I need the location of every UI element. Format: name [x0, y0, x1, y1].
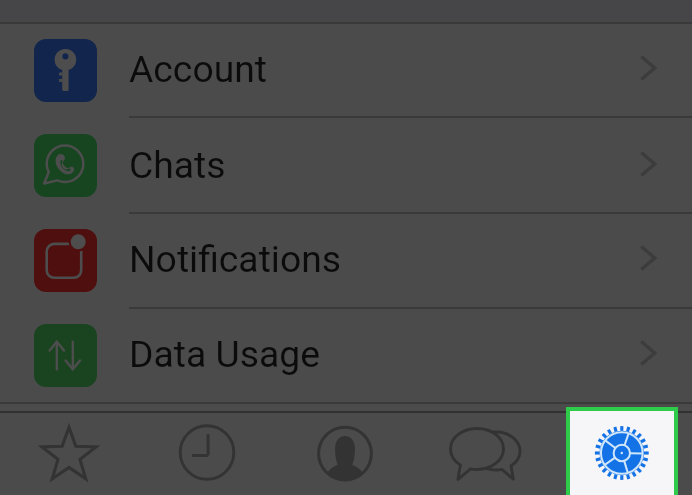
staticText: Data Usage	[129, 332, 320, 376]
button[interactable]: Settings	[570, 411, 674, 495]
button[interactable]: Notifications	[0, 213, 692, 307]
button[interactable]: Contacts	[290, 413, 400, 495]
staticText: Chats	[129, 143, 226, 187]
button[interactable]: Chats	[0, 118, 692, 213]
button[interactable]: Chats	[430, 413, 540, 495]
button[interactable]: Data Usage	[0, 308, 692, 402]
button[interactable]: Favorites	[14, 413, 124, 495]
button[interactable]: Recents	[152, 413, 262, 495]
button[interactable]: Account	[0, 23, 692, 117]
staticText: Notifications	[129, 237, 342, 281]
staticText: Account	[129, 47, 268, 91]
